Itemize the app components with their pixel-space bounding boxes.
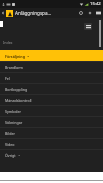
button[interactable]: Fel — [0, 72, 103, 83]
button[interactable]: Info — [76, 8, 85, 18]
staticText: Symboler — [5, 109, 21, 114]
button[interactable]: Mail — [94, 8, 103, 18]
staticText: Anläggningspa… — [15, 10, 76, 16]
button[interactable]: Brandlarm — [0, 61, 103, 72]
staticText: Övrigt — [5, 153, 16, 158]
staticText: Bilder — [5, 131, 15, 136]
button[interactable]: Bortkoppling — [0, 83, 103, 94]
button[interactable]: Symboler — [0, 105, 103, 116]
staticText: Index — [3, 40, 13, 45]
staticText: Månadskontroll — [5, 98, 32, 103]
staticText: 15:42 — [90, 1, 101, 7]
button[interactable]: Video — [0, 138, 103, 149]
staticText: Brandlarm — [5, 65, 23, 70]
staticText: Bortkoppling — [5, 87, 28, 92]
button[interactable]: Bilder — [0, 127, 103, 138]
button[interactable]: Månadskontroll — [0, 94, 103, 105]
button[interactable]: Övrigt — [0, 149, 103, 160]
button[interactable]: Sökningar — [0, 116, 103, 127]
button[interactable]: Försäljning — [0, 50, 103, 61]
staticText: Sökningar — [5, 120, 23, 125]
button[interactable]: Filter — [85, 8, 94, 18]
staticText: Video — [5, 142, 15, 147]
button[interactable]: Back — [0, 8, 6, 18]
button[interactable]: Menu — [84, 23, 92, 30]
staticText: Fel — [5, 76, 10, 81]
staticText: Försäljning — [5, 54, 25, 59]
